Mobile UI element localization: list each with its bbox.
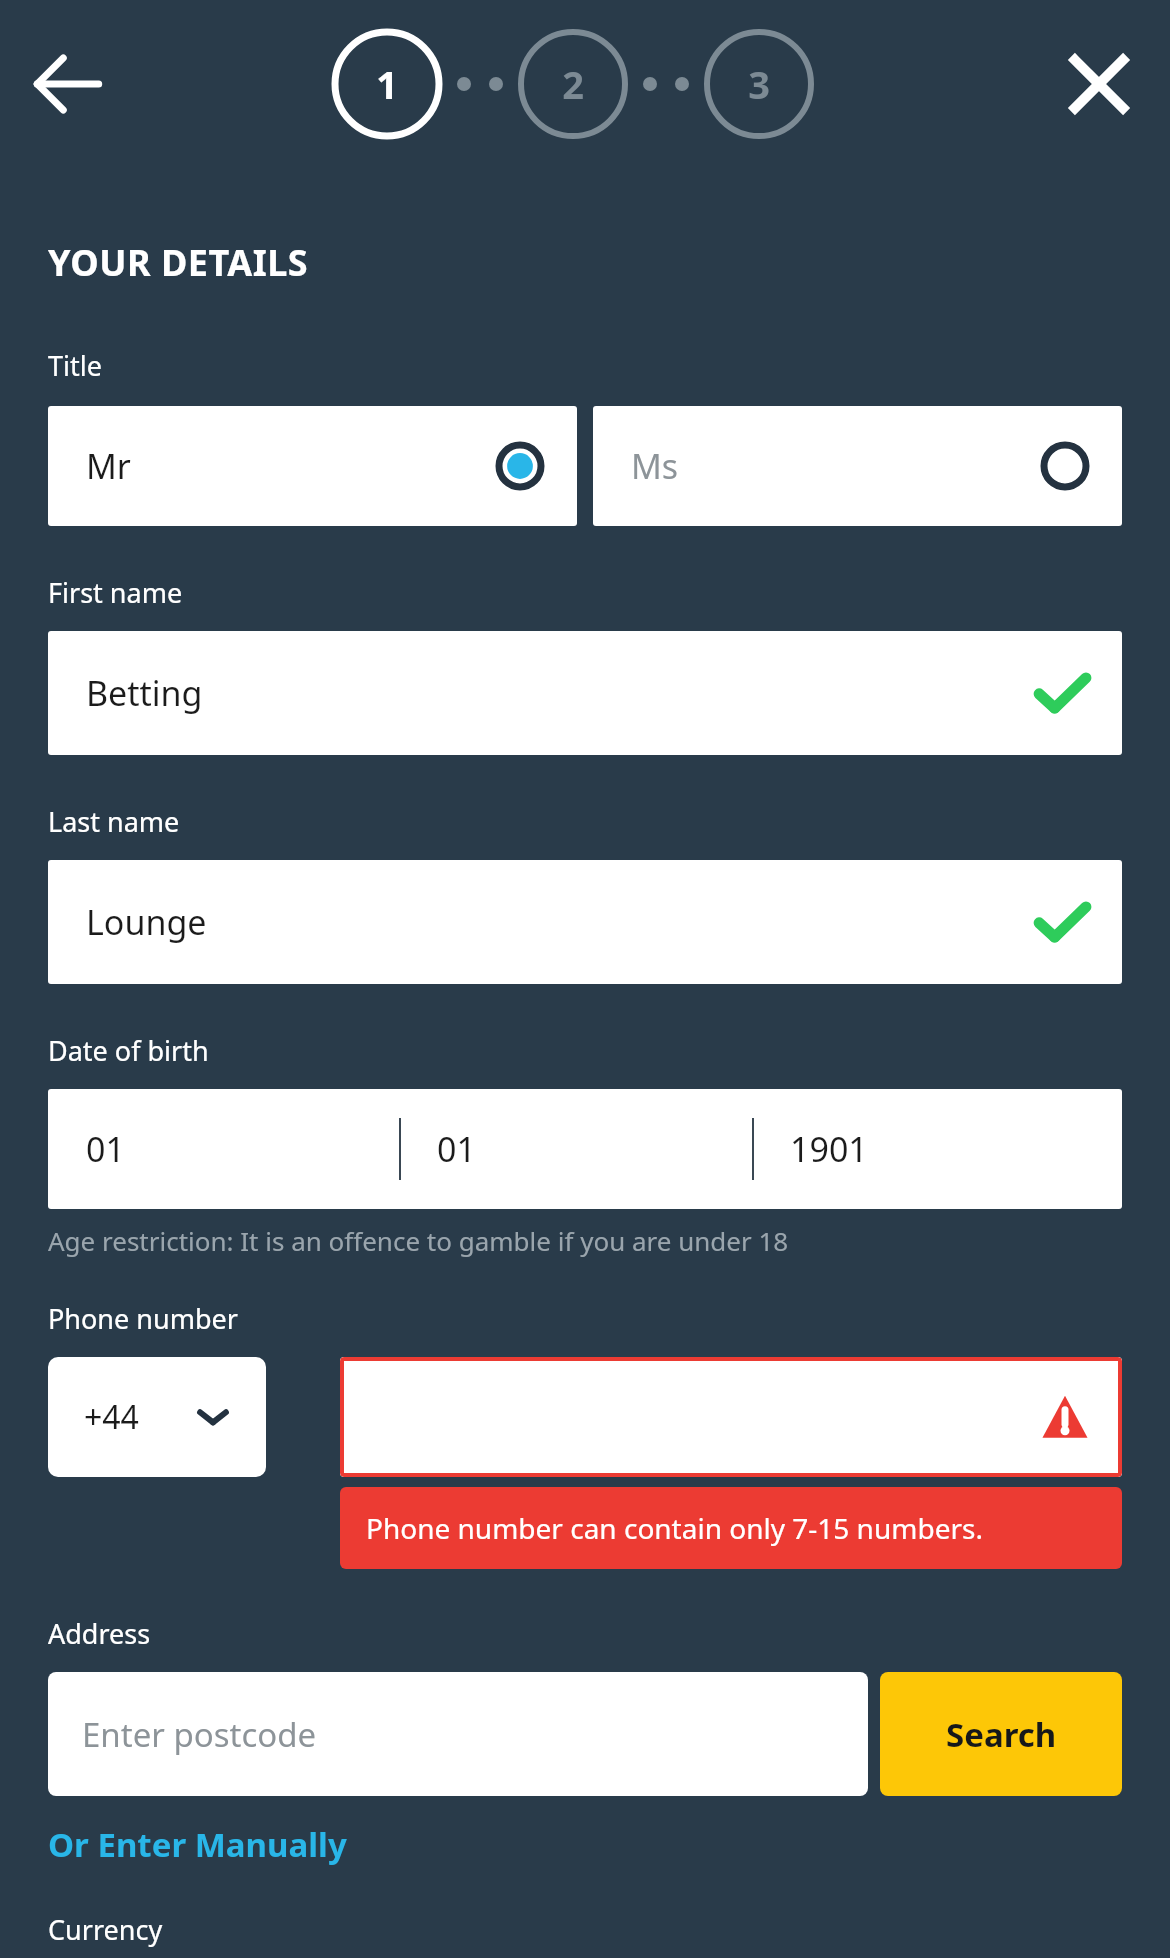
staticText: Search bbox=[946, 1712, 1057, 1757]
staticText: Enter postcode bbox=[82, 1712, 317, 1757]
staticText: 01 bbox=[86, 1126, 125, 1172]
staticText: YOUR DETAILS bbox=[48, 238, 309, 287]
staticText: Phone number bbox=[48, 1300, 238, 1337]
button[interactable]: 01 bbox=[48, 1089, 399, 1209]
staticText: Or Enter Manually bbox=[48, 1822, 347, 1867]
staticText: Last name bbox=[48, 803, 180, 840]
button[interactable]: Enter postcode bbox=[48, 1672, 868, 1796]
button[interactable]: 3 bbox=[703, 28, 815, 140]
button[interactable]: Betting bbox=[48, 631, 1122, 755]
button[interactable]: Close bbox=[1056, 41, 1142, 127]
button[interactable]: Ms bbox=[593, 406, 1122, 526]
staticText: 2 bbox=[562, 58, 584, 110]
button[interactable]: 1 bbox=[331, 28, 443, 140]
staticText: Betting bbox=[86, 670, 203, 716]
staticText: Currency bbox=[48, 1911, 163, 1948]
button[interactable]: Mr bbox=[48, 406, 577, 526]
staticText: Phone number can contain only 7-15 numbe… bbox=[366, 1509, 983, 1547]
staticText: Title bbox=[48, 347, 102, 384]
button[interactable]: Lounge bbox=[48, 860, 1122, 984]
staticText: Ms bbox=[631, 443, 679, 489]
button[interactable]: 01 bbox=[401, 1089, 752, 1209]
staticText: Date of birth bbox=[48, 1032, 209, 1069]
button[interactable]: Back bbox=[20, 36, 116, 132]
button[interactable] bbox=[340, 1357, 1122, 1477]
staticText: First name bbox=[48, 574, 183, 611]
button[interactable]: Or Enter Manually bbox=[48, 1822, 347, 1867]
button[interactable]: Search bbox=[880, 1672, 1122, 1796]
button[interactable]: +44 bbox=[48, 1357, 266, 1477]
button[interactable]: 1901 bbox=[754, 1089, 1122, 1209]
button[interactable]: 2 bbox=[517, 28, 629, 140]
staticText: Mr bbox=[86, 443, 131, 489]
staticText: Age restriction: It is an offence to gam… bbox=[48, 1223, 789, 1258]
staticText: 3 bbox=[748, 58, 770, 110]
staticText: 1 bbox=[376, 58, 398, 110]
staticText: 01 bbox=[437, 1126, 476, 1172]
staticText: Lounge bbox=[86, 899, 207, 945]
staticText: +44 bbox=[84, 1395, 139, 1439]
staticText: 1901 bbox=[790, 1126, 868, 1172]
staticText: Address bbox=[48, 1615, 151, 1652]
